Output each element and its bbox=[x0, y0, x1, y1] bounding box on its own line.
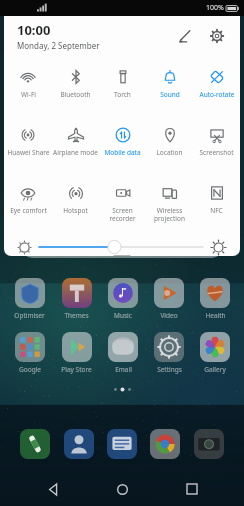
staticText: Health bbox=[205, 311, 226, 320]
button[interactable]: Gallery bbox=[192, 332, 238, 374]
staticText: Video bbox=[160, 311, 178, 320]
staticText: Mobile data bbox=[104, 148, 141, 157]
staticText: Optimiser bbox=[14, 311, 45, 320]
button[interactable]: Huawei Share bbox=[4, 120, 52, 178]
staticText: Music bbox=[114, 311, 132, 320]
staticText: Screenshot bbox=[199, 148, 234, 157]
button[interactable]: Themes bbox=[53, 278, 100, 320]
staticText: Settings bbox=[157, 365, 182, 374]
button[interactable]: Settings bbox=[204, 23, 230, 49]
button[interactable]: Health bbox=[192, 278, 238, 320]
button[interactable]: messages bbox=[106, 428, 138, 460]
staticText: NFC bbox=[210, 206, 223, 215]
button[interactable]: phone bbox=[19, 428, 51, 460]
button[interactable]: Google bbox=[6, 332, 53, 374]
button[interactable]: Mobile data bbox=[99, 120, 146, 178]
staticText: Huawei Share bbox=[7, 148, 50, 157]
staticText: Eye comfort bbox=[10, 206, 47, 215]
button[interactable]: camera bbox=[193, 428, 225, 460]
button[interactable]: Location bbox=[146, 120, 193, 178]
staticText: Bluetooth bbox=[60, 90, 91, 99]
button[interactable]: Video bbox=[146, 278, 192, 320]
staticText: Monday, 2 September bbox=[17, 40, 100, 51]
button[interactable]: Optimiser bbox=[6, 278, 53, 320]
button[interactable]: Email bbox=[100, 332, 146, 374]
button[interactable]: Brightness bbox=[39, 238, 203, 256]
staticText: 10:00 bbox=[17, 21, 51, 39]
button[interactable]: Airplane mode bbox=[52, 120, 99, 178]
staticText: Hotspot bbox=[63, 206, 88, 215]
button[interactable]: Auto-rotate bbox=[193, 62, 240, 120]
staticText: Screen recorder bbox=[109, 206, 136, 223]
button[interactable]: Back bbox=[36, 472, 70, 506]
staticText: Location bbox=[156, 148, 183, 157]
staticText: Google bbox=[19, 365, 41, 374]
button[interactable]: Recent apps bbox=[175, 472, 209, 506]
staticText: Torch bbox=[114, 90, 131, 99]
staticText: Airplane mode bbox=[53, 148, 98, 157]
staticText: 100% bbox=[206, 3, 224, 13]
button[interactable]: Home bbox=[105, 472, 139, 506]
button[interactable]: contacts bbox=[63, 428, 95, 460]
staticText: Auto-rotate bbox=[199, 90, 235, 99]
staticText: Themes bbox=[64, 311, 89, 320]
button[interactable]: Hotspot bbox=[52, 178, 99, 236]
button[interactable]: Torch bbox=[99, 62, 146, 120]
button[interactable]: Edit quick settings bbox=[172, 23, 198, 49]
button[interactable]: Play Store bbox=[53, 332, 100, 374]
button[interactable]: Music bbox=[100, 278, 146, 320]
staticText: Wireless projection bbox=[154, 206, 185, 223]
button[interactable]: Bluetooth bbox=[52, 62, 99, 120]
staticText: Wi-Fi bbox=[21, 90, 36, 99]
staticText: Email bbox=[115, 365, 132, 374]
staticText: Gallery bbox=[204, 365, 226, 374]
button[interactable]: Screenshot bbox=[193, 120, 240, 178]
button[interactable]: Settings bbox=[146, 332, 192, 374]
button[interactable]: NFC bbox=[193, 178, 240, 236]
button[interactable]: Screen recorder bbox=[99, 178, 146, 236]
button[interactable]: Eye comfort bbox=[4, 178, 52, 236]
staticText: Play Store bbox=[61, 365, 92, 374]
staticText: Sound bbox=[160, 90, 180, 99]
button[interactable]: Wireless projection bbox=[146, 178, 193, 236]
button[interactable]: chrome bbox=[149, 428, 181, 460]
button[interactable]: Wi-Fi bbox=[4, 62, 52, 120]
button[interactable]: Sound bbox=[146, 62, 193, 120]
